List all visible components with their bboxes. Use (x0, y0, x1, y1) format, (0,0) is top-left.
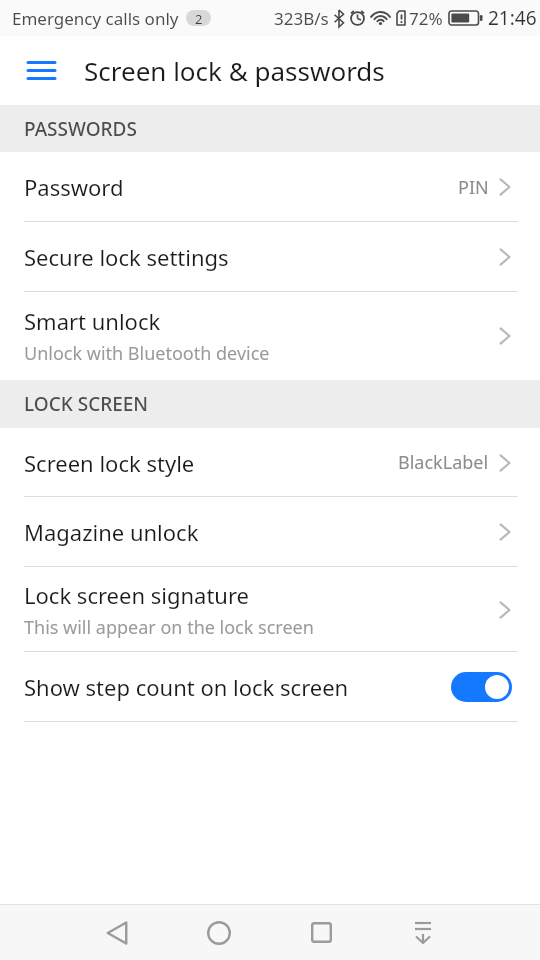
button[interactable]: Show step count on lock screen (0, 652, 540, 722)
button[interactable] (270, 905, 372, 960)
button[interactable] (66, 905, 168, 960)
staticText: Password (24, 172, 124, 202)
staticText: Secure lock settings (24, 242, 229, 272)
button[interactable]: Smart unlock (0, 292, 540, 380)
staticText: 2 (195, 10, 203, 26)
staticText: Unlock with Bluetooth device (24, 341, 270, 366)
staticText: Smart unlock (24, 306, 161, 336)
staticText: 323B/s (274, 7, 329, 30)
button[interactable]: Lock screen signature (0, 567, 540, 652)
staticText: Show step count on lock screen (24, 672, 349, 702)
button[interactable] (451, 672, 512, 702)
staticText: BlackLabel (398, 450, 489, 475)
staticText: This will appear on the lock screen (24, 615, 314, 640)
staticText: Screen lock & passwords (84, 53, 385, 88)
staticText: 21:46 (488, 5, 537, 31)
staticText: PASSWORDS (24, 116, 137, 142)
button[interactable]: Secure lock settings (0, 222, 540, 292)
staticText: Magazine unlock (24, 517, 199, 547)
staticText: Screen lock style (24, 448, 195, 478)
button[interactable] (0, 36, 84, 105)
button[interactable] (168, 905, 270, 960)
button[interactable]: Screen lock style (0, 428, 540, 497)
button[interactable] (372, 905, 474, 960)
button[interactable]: Magazine unlock (0, 497, 540, 567)
staticText: Lock screen signature (24, 580, 250, 610)
staticText: 72% (409, 7, 443, 30)
staticText: Emergency calls only (12, 7, 179, 30)
staticText: LOCK SCREEN (24, 391, 149, 417)
button[interactable]: Password (0, 152, 540, 222)
staticText: PIN (458, 175, 489, 200)
